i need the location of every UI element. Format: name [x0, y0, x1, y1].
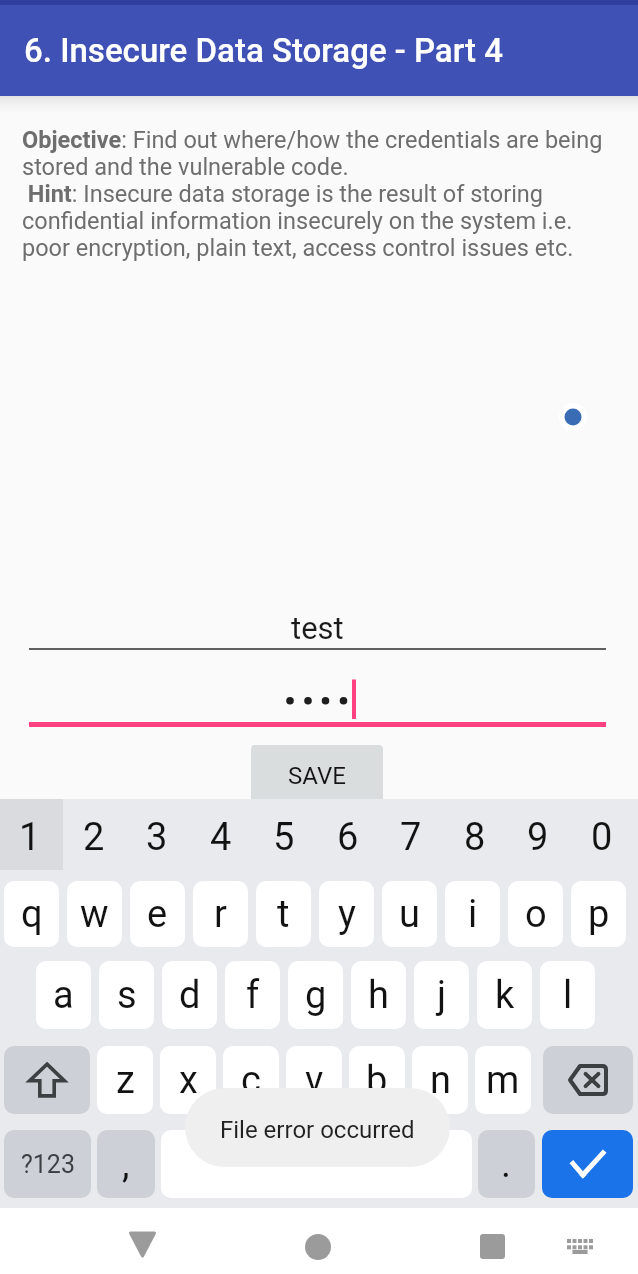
button[interactable]: v — [286, 1046, 342, 1114]
button[interactable]: . — [478, 1130, 535, 1198]
button[interactable]: m — [475, 1046, 531, 1114]
button[interactable]: 6. Insecure Data Storage - Part 4 — [0, 5, 638, 96]
button[interactable]: 8 — [445, 799, 509, 870]
button[interactable]: j — [414, 961, 469, 1029]
button[interactable]: 2 — [64, 799, 128, 870]
button[interactable]: l — [540, 961, 595, 1029]
button[interactable]: SAVE — [251, 745, 383, 803]
button[interactable]: r — [193, 881, 248, 947]
staticText: 0 — [591, 815, 613, 860]
staticText: u — [399, 892, 420, 937]
button[interactable]: c — [223, 1046, 279, 1114]
button[interactable]: 1 — [0, 799, 64, 870]
button[interactable]: s — [99, 961, 154, 1029]
button[interactable]: g — [288, 961, 343, 1029]
staticText: s — [117, 973, 137, 1018]
staticText: 2 — [83, 815, 105, 860]
button[interactable]: 7 — [381, 799, 445, 870]
button[interactable]: Hide keyboard — [110, 1212, 175, 1274]
staticText: 5 — [273, 815, 295, 860]
staticText: m — [486, 1058, 520, 1103]
staticText: ?123 — [21, 1150, 75, 1179]
staticText: o — [525, 892, 547, 937]
button[interactable]: 0 — [572, 799, 636, 870]
staticText: j — [437, 973, 447, 1018]
button[interactable]: z — [97, 1046, 153, 1114]
staticText: 4 — [210, 815, 232, 860]
staticText: v — [305, 1058, 324, 1103]
staticText: test — [291, 610, 344, 646]
staticText: . — [501, 1142, 512, 1187]
staticText: y — [338, 892, 356, 937]
button[interactable]: Enter — [542, 1130, 633, 1198]
button[interactable]: a — [36, 961, 91, 1029]
staticText: Objective: Find out where/how the creden… — [22, 126, 610, 261]
button[interactable] — [29, 675, 606, 722]
button[interactable]: i — [445, 881, 500, 947]
button[interactable]: b — [349, 1046, 405, 1114]
button[interactable]: d — [162, 961, 217, 1029]
staticText: k — [495, 973, 515, 1018]
button[interactable]: Shift — [4, 1046, 90, 1114]
button[interactable]: 4 — [191, 799, 255, 870]
button[interactable]: Home — [285, 1214, 350, 1274]
button[interactable]: n — [412, 1046, 468, 1114]
button[interactable]: p — [571, 881, 626, 947]
staticText: 7 — [400, 815, 422, 860]
staticText: d — [179, 973, 201, 1018]
button[interactable]: ?123 — [4, 1130, 91, 1198]
button[interactable]: k — [477, 961, 532, 1029]
staticText: 8 — [464, 815, 486, 860]
button[interactable]: e — [130, 881, 185, 947]
staticText: 3 — [146, 815, 168, 860]
staticText: q — [21, 892, 43, 937]
staticText: 6. Insecure Data Storage - Part 4 — [24, 31, 504, 70]
button[interactable]: h — [351, 961, 406, 1029]
staticText: 6 — [337, 815, 359, 860]
staticText: 1 — [19, 815, 41, 860]
staticText: 9 — [527, 815, 549, 860]
button[interactable]: 5 — [254, 799, 318, 870]
button[interactable]: 9 — [508, 799, 572, 870]
staticText: c — [241, 1058, 261, 1103]
button[interactable]: o — [508, 881, 563, 947]
staticText: SAVE — [288, 762, 346, 790]
button[interactable]: f — [225, 961, 280, 1029]
staticText: e — [147, 892, 168, 937]
staticText: b — [366, 1058, 388, 1103]
button[interactable]: , — [97, 1130, 155, 1198]
button[interactable]: y — [319, 881, 374, 947]
staticText: p — [588, 892, 610, 937]
button[interactable]: t — [256, 881, 311, 947]
button[interactable]: Recents — [460, 1214, 525, 1274]
staticText: a — [53, 973, 74, 1018]
staticText: z — [116, 1058, 135, 1103]
button[interactable]: x — [160, 1046, 216, 1114]
button[interactable]: q — [4, 881, 59, 947]
button[interactable]: w — [67, 881, 122, 947]
button[interactable]: Backspace — [543, 1046, 633, 1114]
staticText: n — [430, 1058, 451, 1103]
staticText: File error occurred — [220, 1116, 415, 1144]
button[interactable]: test — [29, 602, 606, 650]
staticText: t — [277, 892, 290, 937]
staticText: h — [368, 973, 389, 1018]
staticText: , — [122, 1142, 130, 1187]
button[interactable] — [161, 1130, 472, 1198]
staticText: x — [179, 1058, 198, 1103]
staticText: f — [246, 973, 260, 1018]
staticText: g — [305, 973, 327, 1018]
button[interactable]: 3 — [127, 799, 191, 870]
button[interactable]: Switch keyboard — [547, 1214, 612, 1274]
staticText: r — [214, 892, 227, 937]
staticText: l — [563, 973, 573, 1018]
button[interactable]: 6 — [318, 799, 382, 870]
button[interactable]: u — [382, 881, 437, 947]
staticText: i — [468, 892, 478, 937]
staticText: w — [80, 892, 109, 937]
